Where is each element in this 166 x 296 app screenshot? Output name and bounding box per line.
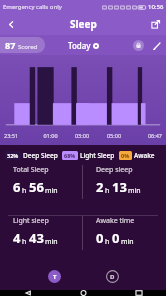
button[interactable]: Recents — [111, 290, 166, 296]
staticText: Deep sleep — [96, 165, 133, 175]
staticText: 0% — [121, 152, 130, 159]
staticText: 6 — [13, 178, 21, 196]
staticText: 87 — [5, 39, 16, 51]
staticText: 32% — [7, 152, 19, 159]
staticText: Deep Sleep — [23, 151, 58, 160]
button[interactable]: Edit — [150, 39, 163, 52]
staticText: 01:00 — [35, 132, 66, 139]
staticText: h — [22, 186, 27, 196]
staticText: Light sleep — [13, 216, 49, 226]
staticText: T — [53, 273, 57, 281]
staticText: min — [121, 237, 134, 247]
button[interactable]: Duration view — [106, 270, 119, 283]
staticText: Sleep — [70, 17, 97, 31]
staticText: 13 — [112, 178, 127, 196]
staticText: 0 — [112, 229, 120, 247]
staticText: 56 — [29, 178, 44, 196]
staticText: Awake time — [96, 216, 135, 226]
button[interactable]: Back — [0, 13, 22, 35]
staticText: Total Sleep — [13, 165, 49, 175]
button[interactable]: Alarm — [132, 39, 145, 52]
staticText: min — [45, 186, 58, 196]
staticText: Awake — [134, 151, 155, 160]
staticText: Today — [68, 40, 91, 51]
staticText: 06:47 — [130, 132, 162, 139]
button[interactable]: Time view — [48, 270, 61, 283]
staticText: 03:00 — [66, 132, 98, 139]
staticText: 23:51 — [4, 132, 35, 139]
staticText: 2 — [96, 178, 104, 196]
staticText: h — [105, 237, 110, 247]
staticText: h — [105, 186, 110, 196]
staticText: 05:00 — [98, 132, 130, 139]
button[interactable]: Share — [144, 13, 166, 35]
staticText: h — [22, 237, 27, 247]
staticText: 0 — [96, 229, 104, 247]
staticText: 43 — [29, 229, 44, 247]
button[interactable]: Today — [68, 40, 99, 51]
staticText: min — [128, 186, 141, 196]
staticText: D — [110, 273, 115, 281]
staticText: 4 — [13, 229, 21, 247]
staticText: Emergency calls only — [3, 3, 62, 11]
button[interactable]: Back — [0, 290, 56, 296]
staticText: 10:56 — [148, 3, 164, 11]
staticText: min — [45, 237, 58, 247]
button[interactable]: 87 — [0, 37, 45, 53]
staticText: Light Sleep — [80, 151, 115, 160]
staticText: Scored — [18, 43, 38, 51]
button[interactable]: Home — [56, 290, 111, 296]
staticText: 68% — [64, 152, 76, 159]
